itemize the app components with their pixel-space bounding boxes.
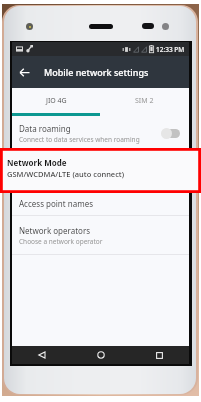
staticText: Access point names	[19, 198, 94, 209]
staticText: Mobile network settings	[44, 66, 149, 78]
staticText: Connect to data services when roaming	[19, 135, 140, 144]
staticText: Choose a network operator	[19, 237, 103, 246]
button[interactable]: Back	[12, 60, 36, 84]
button[interactable]: Network operators	[12, 216, 189, 254]
button[interactable]: Data roaming	[12, 116, 189, 150]
staticText: Data roaming	[19, 123, 71, 134]
button[interactable]: SIM 2	[100, 88, 189, 113]
staticText: JIO 4G	[46, 96, 67, 106]
staticText: Network operators	[19, 225, 91, 236]
button[interactable]: Network Mode	[0, 148, 201, 193]
button[interactable]: Back	[12, 346, 71, 364]
button[interactable]: Access point names	[12, 191, 189, 215]
button[interactable]: Home	[71, 346, 130, 364]
button[interactable]: JIO 4G	[12, 88, 100, 113]
staticText: SIM 2	[135, 96, 154, 106]
staticText: Network Mode	[7, 157, 67, 168]
staticText: 12:33 PM	[156, 45, 185, 54]
button[interactable]: Recent apps	[130, 346, 189, 364]
staticText: GSM/WCDMA/LTE (auto connect)	[7, 169, 125, 179]
